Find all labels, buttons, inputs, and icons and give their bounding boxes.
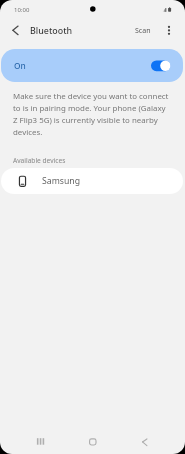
button[interactable]: More options	[159, 20, 179, 40]
button[interactable]: On	[1, 49, 183, 82]
staticText: 10:00	[14, 6, 30, 14]
button[interactable]: Samsung	[1, 168, 183, 194]
staticText: Bluetooth	[30, 24, 73, 36]
button[interactable]: Recent apps	[26, 427, 55, 454]
staticText: Samsung	[42, 175, 81, 187]
staticText: On	[14, 60, 26, 71]
button[interactable]: Scan	[131, 21, 155, 41]
staticText: Available devices	[13, 156, 66, 165]
staticText: Scan	[135, 26, 151, 36]
button[interactable]: Back	[130, 427, 159, 454]
button[interactable]: Navigate up	[4, 17, 28, 41]
button[interactable]: Home	[78, 427, 107, 454]
staticText: Make sure the device you want to connect…	[13, 90, 170, 138]
